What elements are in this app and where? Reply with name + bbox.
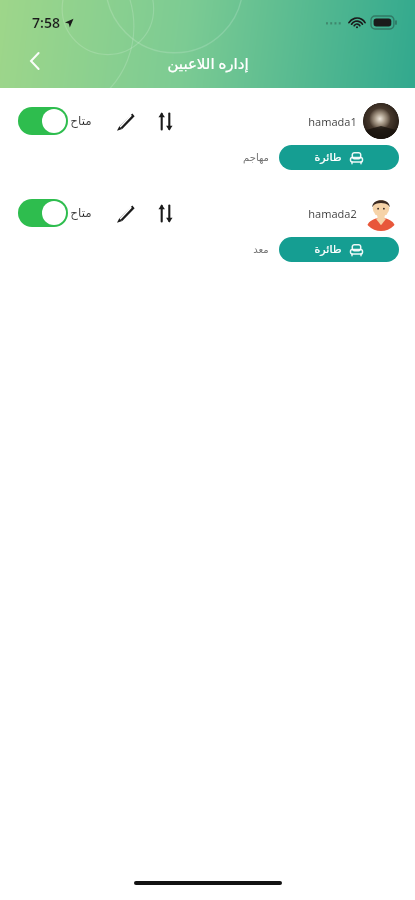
staticText: hamada1	[308, 114, 357, 129]
button[interactable]: طائرة	[279, 145, 399, 170]
staticText: طائرة	[314, 151, 342, 164]
button[interactable]: Edit	[108, 196, 142, 230]
button[interactable]: Back	[14, 40, 56, 82]
button[interactable]: Reorder	[148, 104, 182, 138]
button[interactable]: طائرة	[279, 237, 399, 262]
staticText: إداره اللاعبين	[167, 53, 249, 73]
staticText: hamada2	[308, 206, 357, 221]
button[interactable]: Edit	[108, 104, 142, 138]
staticText: طائرة	[314, 243, 342, 256]
staticText: مهاجم	[243, 152, 269, 164]
staticText: معد	[253, 244, 269, 256]
button[interactable]: Availability toggle	[18, 199, 68, 227]
button[interactable]: Reorder	[148, 196, 182, 230]
button[interactable]: Availability toggle	[8, 97, 407, 179]
staticText: 7:58	[32, 13, 60, 32]
staticText: متاح	[70, 114, 92, 128]
button[interactable]: Availability toggle	[8, 189, 407, 271]
staticText: متاح	[70, 206, 92, 220]
button[interactable]: Availability toggle	[18, 107, 68, 135]
